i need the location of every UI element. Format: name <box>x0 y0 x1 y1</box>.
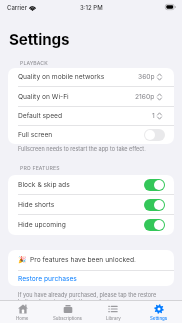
staticText: 3:12 PM <box>80 4 103 11</box>
staticText: Settings <box>9 30 70 48</box>
staticText: Hide upcoming <box>18 221 66 229</box>
staticText: Quality on Wi-Fi <box>18 93 69 101</box>
button[interactable]: Subscriptions <box>45 301 90 323</box>
button[interactable]: Settings <box>136 301 182 323</box>
staticText: 2160p <box>135 93 155 101</box>
staticText: Full screen <box>18 131 53 139</box>
button[interactable]: Hide upcoming <box>8 215 174 235</box>
staticText: Pro features have been unlocked. <box>30 256 136 264</box>
staticText: Settings <box>150 316 168 321</box>
button[interactable]: Quality on mobile networks <box>8 68 174 86</box>
staticText: Subscriptions <box>53 316 82 321</box>
staticText: Hide shorts <box>18 201 55 209</box>
staticText: Quality on mobile networks <box>18 73 105 81</box>
staticText: PRO FEATURES <box>20 165 60 171</box>
button[interactable]: Library <box>90 301 136 323</box>
staticText: Restore purchases <box>18 275 77 283</box>
staticText: Carrier <box>7 4 27 11</box>
button[interactable]: Quality on Wi-Fi <box>8 87 174 106</box>
staticText: Library <box>106 316 121 321</box>
staticText: 🎉 <box>18 256 27 264</box>
button[interactable]: Full screen <box>8 126 174 144</box>
staticText: 1 <box>152 112 155 120</box>
button[interactable]: Default speed <box>8 107 174 125</box>
button[interactable]: Restore purchases <box>8 271 174 286</box>
staticText: Block & skip ads <box>18 181 70 189</box>
staticText: Default speed <box>18 112 63 120</box>
button[interactable]: Block & skip ads <box>8 175 174 194</box>
staticText: If you have already purchased, please ta… <box>18 292 157 306</box>
staticText: 360p <box>138 73 155 81</box>
staticText: Home <box>16 316 29 321</box>
button[interactable]: Hide shorts <box>8 195 174 214</box>
button[interactable]: Home <box>0 301 45 323</box>
staticText: PLAYBACK <box>20 60 48 66</box>
staticText: Fullscreen needs to restart the app to t… <box>18 146 146 153</box>
